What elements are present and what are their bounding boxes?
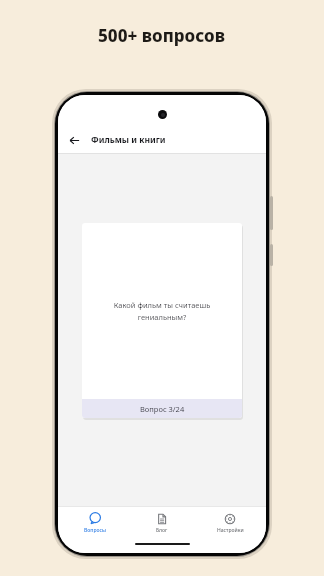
button[interactable]: Какой фильм ты считаешь гениальным? — [82, 223, 242, 418]
staticText: Блог — [156, 527, 168, 534]
staticText: Вопросы — [84, 527, 106, 534]
staticText: Фильмы и книги — [91, 134, 166, 146]
staticText: Какой фильм ты считаешь гениальным? — [100, 300, 224, 323]
staticText: 500+ вопросов — [98, 24, 226, 47]
button[interactable]: Блог — [131, 507, 193, 539]
button[interactable]: Вопросы — [64, 507, 126, 539]
staticText: Вопрос 3/24 — [140, 404, 185, 414]
staticText: Настройки — [217, 527, 244, 534]
button[interactable]: Настройки — [199, 507, 261, 539]
button[interactable]: Back — [64, 130, 84, 150]
